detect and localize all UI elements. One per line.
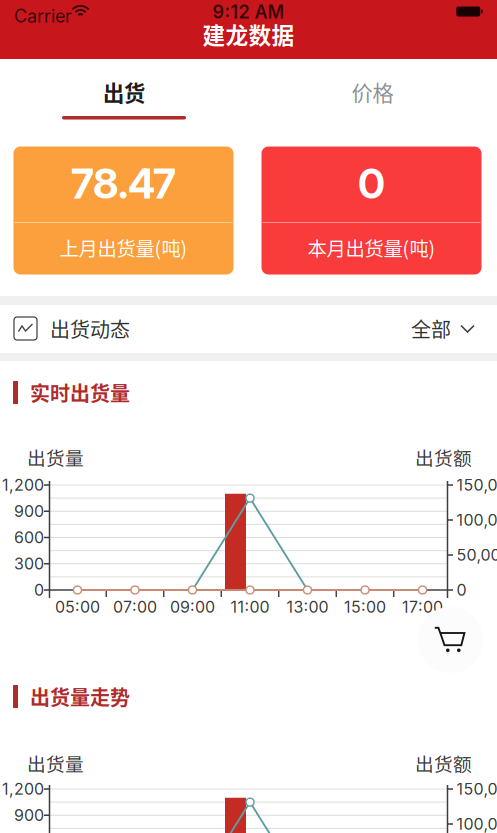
button[interactable]: 价格 xyxy=(248,59,497,121)
staticText: 600 xyxy=(14,528,44,547)
staticText: 建龙数据 xyxy=(202,18,294,50)
button[interactable]: 0 xyxy=(261,146,481,274)
staticText: 1,200 xyxy=(2,475,44,495)
staticText: 150,000 xyxy=(456,779,497,799)
staticText: 11:00 xyxy=(230,597,269,617)
staticText: 100,000 xyxy=(456,510,497,530)
staticText: 1,200 xyxy=(2,779,44,799)
staticText: 全部 xyxy=(411,314,451,343)
staticText: 300 xyxy=(14,554,44,573)
staticText: 50,000 xyxy=(456,545,497,565)
staticText: 100,000 xyxy=(456,814,497,833)
staticText: 09:00 xyxy=(170,597,215,617)
staticText: 出货量 xyxy=(27,443,84,470)
button[interactable]: 全部 xyxy=(400,305,497,353)
button[interactable]: 78.47 xyxy=(13,146,233,274)
staticText: 出货 xyxy=(103,77,145,107)
button[interactable]: 出货 xyxy=(0,59,248,121)
staticText: 900 xyxy=(14,502,44,521)
staticText: 13:00 xyxy=(286,597,328,617)
staticText: 本月出货量(吨) xyxy=(307,233,435,261)
staticText: 0 xyxy=(358,158,385,208)
staticText: 150,000 xyxy=(456,475,497,495)
staticText: 05:00 xyxy=(55,597,100,617)
staticText: 出货量 xyxy=(27,749,84,776)
staticText: 出货量走势 xyxy=(30,682,130,711)
staticText: 上月出货量(吨) xyxy=(59,233,187,261)
staticText: 900 xyxy=(14,806,44,825)
staticText: 0 xyxy=(456,580,466,600)
button[interactable]: 购物车 xyxy=(417,607,483,673)
staticText: 出货额 xyxy=(415,443,472,470)
staticText: Carrier xyxy=(14,5,72,27)
staticText: 实时出货量 xyxy=(30,378,130,407)
staticText: 78.47 xyxy=(71,158,176,208)
staticText: 0 xyxy=(34,580,44,600)
staticText: 价格 xyxy=(351,77,393,107)
staticText: 出货动态 xyxy=(50,314,130,343)
staticText: 15:00 xyxy=(344,597,386,617)
staticText: 17:00 xyxy=(402,597,443,617)
staticText: 07:00 xyxy=(113,597,157,617)
staticText: 出货额 xyxy=(415,749,472,776)
staticText: 9:12 AM xyxy=(212,1,284,23)
